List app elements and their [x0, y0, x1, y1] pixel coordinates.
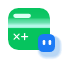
button[interactable]: Pause [38, 34, 55, 52]
button[interactable] [8, 8, 50, 50]
